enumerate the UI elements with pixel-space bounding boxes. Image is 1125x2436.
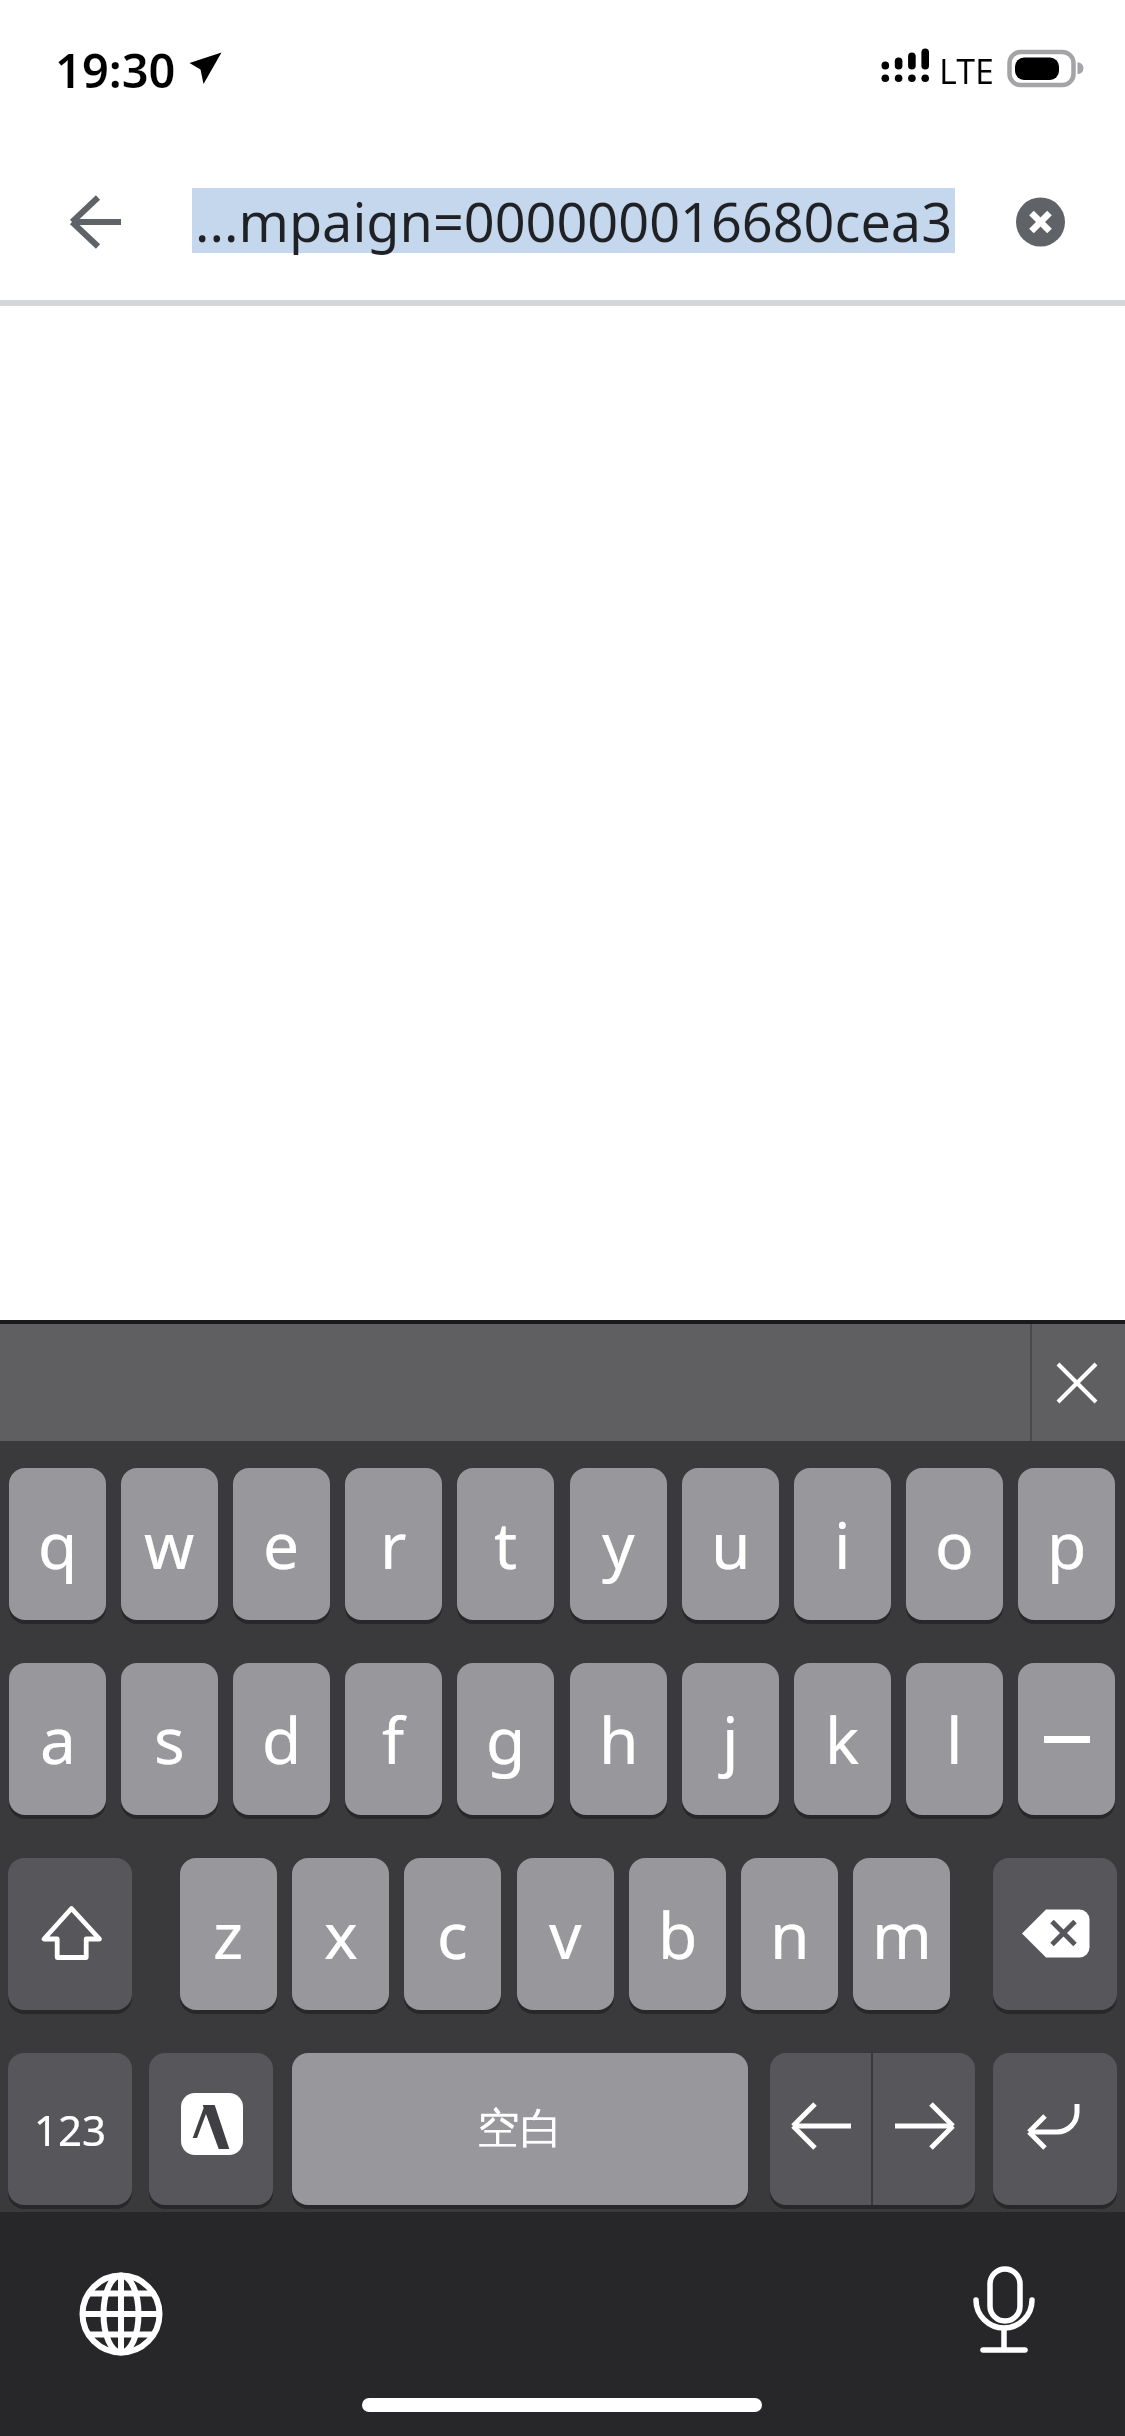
staticText: k — [825, 1696, 860, 1783]
staticText: v — [549, 1891, 582, 1978]
staticText: x — [324, 1891, 358, 1978]
staticText: h — [599, 1696, 639, 1783]
staticText: q — [38, 1501, 78, 1588]
staticText: p — [1047, 1501, 1087, 1588]
staticText: 空白 — [477, 2102, 563, 2156]
staticText: m — [872, 1891, 932, 1978]
staticText: ...mpaign=000000016680cea3 — [195, 184, 953, 258]
staticText: b — [658, 1891, 698, 1978]
staticText: 19:30 — [55, 38, 176, 94]
staticText: u — [711, 1501, 751, 1588]
staticText: y — [602, 1501, 635, 1588]
staticText: w — [144, 1501, 195, 1588]
staticText: f — [382, 1696, 405, 1783]
staticText: t — [494, 1501, 518, 1588]
staticText: 123 — [34, 2101, 107, 2158]
staticText: l — [946, 1696, 963, 1783]
staticText: o — [935, 1501, 974, 1588]
staticText: j — [722, 1696, 739, 1783]
staticText: i — [834, 1501, 851, 1588]
staticText: n — [770, 1891, 810, 1978]
staticText: s — [154, 1696, 185, 1783]
staticText: c — [437, 1891, 468, 1978]
staticText: e — [263, 1501, 300, 1588]
staticText: r — [380, 1501, 407, 1588]
staticText: z — [213, 1891, 244, 1978]
staticText: LTE — [939, 48, 994, 88]
staticText: g — [486, 1696, 526, 1783]
staticText: d — [262, 1696, 302, 1783]
staticText: a — [40, 1696, 76, 1783]
